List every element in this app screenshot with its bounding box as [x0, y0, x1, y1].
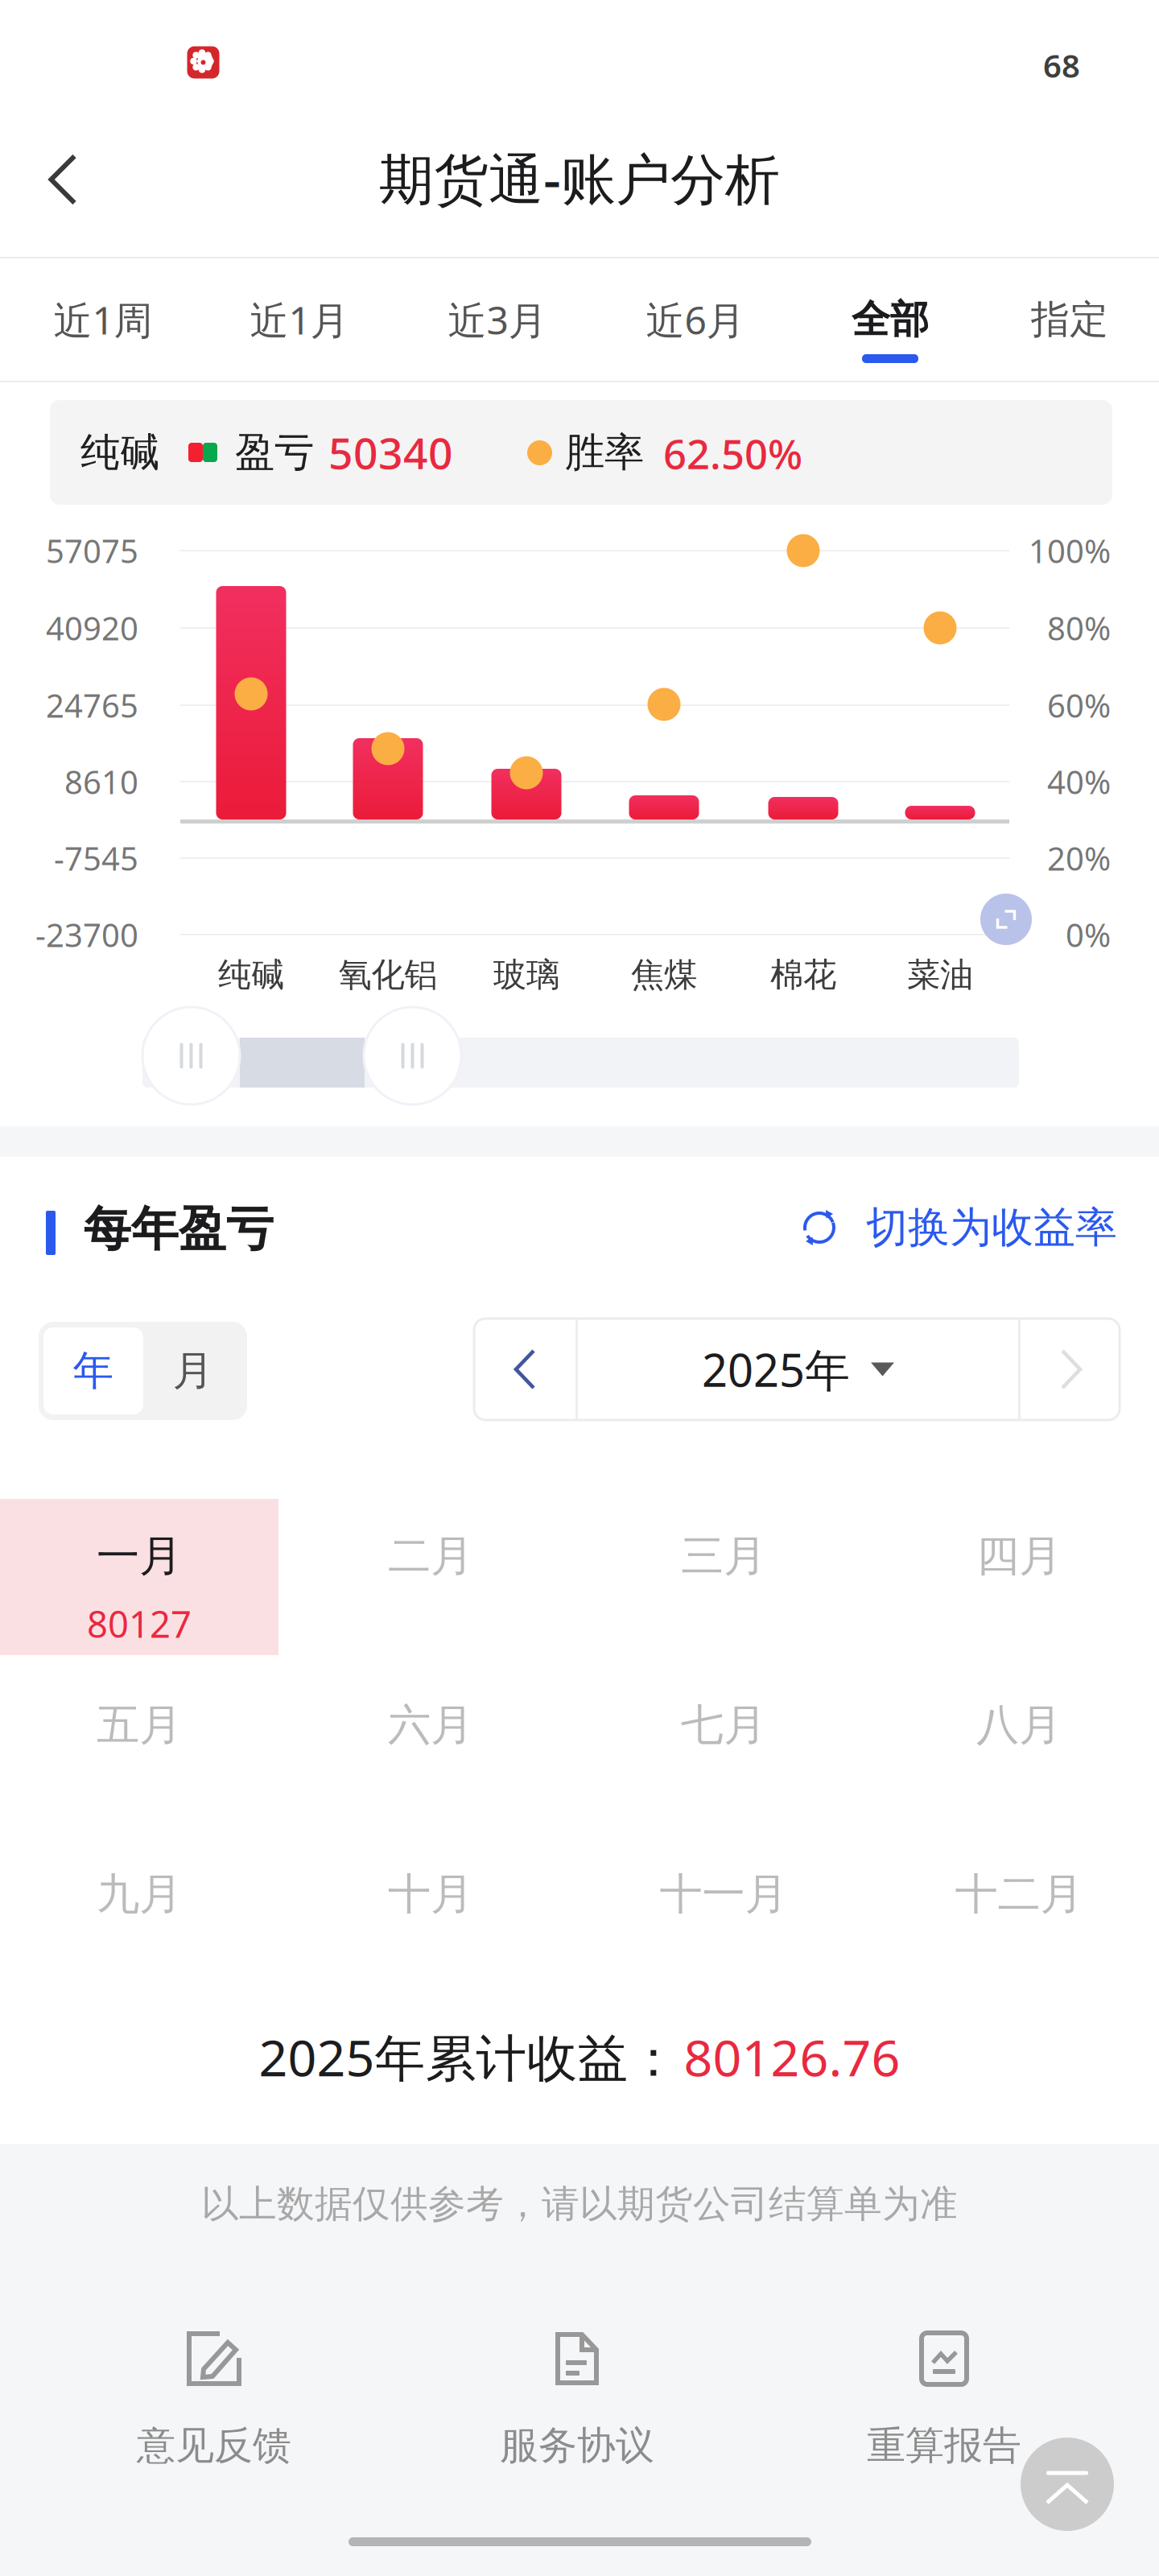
button[interactable]: 下一年: [1021, 1319, 1122, 1420]
staticText: 40%: [1047, 760, 1111, 803]
staticText: 六月: [388, 1699, 473, 1751]
button[interactable]: 八月: [880, 1668, 1158, 1824]
staticText: 近1月: [250, 294, 349, 345]
staticText: 每年盈亏: [84, 1200, 274, 1258]
staticText: 80%: [1047, 606, 1111, 649]
button[interactable]: 五月: [0, 1668, 278, 1824]
button[interactable]: 六月: [291, 1668, 570, 1824]
staticText: 四月: [976, 1530, 1062, 1582]
button[interactable]: 指定: [981, 258, 1158, 381]
button[interactable]: 回到顶部: [1021, 2438, 1114, 2531]
staticText: -23700: [35, 913, 138, 956]
button[interactable]: 三月: [584, 1499, 863, 1655]
staticText: 期货通-账户分析: [379, 142, 780, 214]
staticText: 20%: [1047, 837, 1111, 879]
button[interactable]: 近3月: [409, 258, 586, 381]
button[interactable]: 十二月: [880, 1837, 1158, 1993]
staticText: 纯碱: [218, 954, 284, 995]
staticText: 近3月: [448, 294, 547, 345]
staticText: 九月: [97, 1868, 182, 1920]
staticText: 七月: [681, 1699, 766, 1751]
staticText: 指定: [1031, 296, 1108, 343]
staticText: 棉花: [770, 954, 836, 995]
button[interactable]: 缩放终点: [364, 1007, 461, 1104]
button[interactable]: 四月: [880, 1499, 1158, 1655]
staticText: 近6月: [646, 294, 745, 345]
staticText: 服务协议: [500, 2422, 654, 2469]
staticText: 年: [73, 1346, 114, 1396]
button[interactable]: 缩放起点: [142, 1007, 240, 1104]
button[interactable]: 近6月: [607, 258, 784, 381]
button[interactable]: 九月: [0, 1837, 278, 1993]
staticText: 近1周: [54, 294, 153, 345]
button[interactable]: 服务协议: [456, 2330, 698, 2474]
button[interactable]: 近1月: [211, 258, 388, 381]
staticText: 2025年累计收益：: [259, 2023, 679, 2090]
staticText: 8610: [64, 760, 138, 803]
staticText: 全部: [852, 296, 929, 343]
staticText: 氧化铝: [338, 954, 437, 995]
staticText: 40920: [46, 606, 138, 649]
button[interactable]: 近1周: [14, 258, 192, 381]
button[interactable]: 月: [143, 1327, 243, 1414]
button[interactable]: 全屏查看: [980, 894, 1032, 945]
button[interactable]: 十一月: [584, 1837, 863, 1993]
button[interactable]: 2025年: [578, 1319, 1018, 1420]
staticText: 八月: [976, 1699, 1062, 1751]
button[interactable]: 年: [43, 1327, 143, 1414]
staticText: 68: [1043, 44, 1080, 87]
staticText: 80127: [87, 1599, 192, 1648]
staticText: 50340: [328, 424, 453, 481]
button[interactable]: 十月: [291, 1837, 570, 1993]
staticText: 菜油: [907, 954, 973, 995]
staticText: 盈亏: [235, 428, 314, 477]
staticText: 一月: [97, 1530, 182, 1582]
staticText: 切换为收益率: [866, 1202, 1117, 1253]
button[interactable]: 意见反馈: [93, 2330, 335, 2474]
staticText: 玻璃: [493, 954, 559, 995]
button[interactable]: 切换为收益率: [800, 1203, 1132, 1252]
staticText: 80126.76: [684, 2023, 900, 2090]
button[interactable]: 二月: [291, 1499, 570, 1655]
staticText: -7545: [54, 837, 138, 879]
button[interactable]: 上一年: [474, 1319, 575, 1420]
staticText: 十二月: [955, 1868, 1083, 1920]
button[interactable]: 重算报告: [823, 2330, 1065, 2474]
staticText: 0%: [1066, 913, 1111, 956]
button[interactable]: 返回: [14, 131, 111, 228]
staticText: 五月: [97, 1699, 182, 1751]
staticText: 焦煤: [631, 954, 697, 995]
staticText: 纯碱: [80, 428, 159, 477]
staticText: 2025年: [702, 1339, 850, 1399]
button[interactable]: 七月: [584, 1668, 863, 1824]
staticText: 月: [173, 1346, 214, 1396]
button[interactable]: 一月: [0, 1499, 278, 1655]
staticText: 100%: [1029, 529, 1111, 572]
staticText: 24765: [46, 684, 138, 727]
staticText: 57075: [46, 529, 138, 572]
staticText: 以上数据仅供参考，请以期货公司结算单为准: [201, 2181, 958, 2227]
staticText: 重算报告: [867, 2422, 1021, 2469]
staticText: 胜率: [565, 428, 644, 477]
staticText: 60%: [1047, 684, 1111, 727]
staticText: 十一月: [660, 1868, 788, 1920]
staticText: 意见反馈: [137, 2422, 291, 2469]
staticText: 十月: [388, 1868, 473, 1920]
staticText: 62.50%: [663, 426, 802, 480]
staticText: 二月: [388, 1530, 473, 1582]
staticText: 三月: [681, 1530, 766, 1582]
button[interactable]: 全部: [802, 258, 979, 381]
